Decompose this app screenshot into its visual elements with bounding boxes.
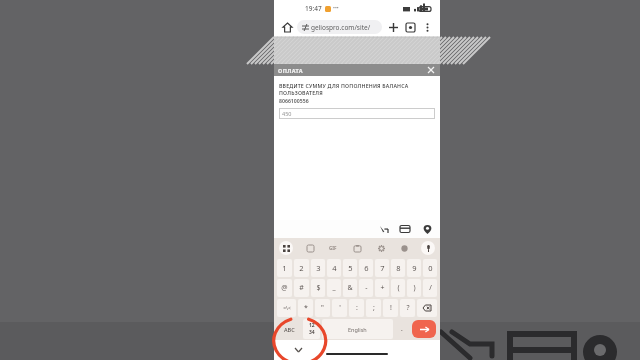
staticText: # [299, 283, 304, 293]
button[interactable]: geliospro.com/site/log [297, 20, 382, 34]
button[interactable]: " [315, 299, 330, 317]
staticText: 5 [348, 263, 353, 273]
staticText: ВВЕДИТЕ СУММУ ДЛЯ ПОПОЛНЕНИЯ БАЛАНСА ПОЛ… [279, 82, 435, 96]
button[interactable]: 0 [423, 259, 437, 277]
staticText: : [356, 303, 358, 313]
staticText: $ [316, 283, 321, 293]
staticText: . [401, 325, 403, 333]
button[interactable]: English [322, 319, 393, 339]
button[interactable]: Autofill [375, 221, 391, 237]
staticText: 8066100556 [279, 97, 309, 104]
button[interactable]: ) [407, 279, 421, 297]
button[interactable]: + [375, 279, 389, 297]
staticText: @ [281, 283, 288, 293]
button[interactable]: Send [412, 320, 436, 338]
button[interactable]: 6 [359, 259, 373, 277]
staticText: GIF [329, 245, 337, 251]
button[interactable]: GIF [326, 241, 340, 255]
button[interactable]: ABC [277, 319, 301, 339]
staticText: ABC [284, 326, 295, 333]
staticText: 3 [316, 263, 321, 273]
staticText: 4 [332, 263, 337, 273]
staticText: 7 [380, 263, 385, 273]
button[interactable]: Settings [374, 241, 388, 255]
staticText: 12 [309, 322, 315, 329]
staticText: ) [413, 283, 416, 293]
button[interactable]: Backspace [417, 299, 437, 317]
button[interactable]: Keyboard settings [279, 241, 293, 255]
button[interactable]: ( [391, 279, 405, 297]
button[interactable]: ! [383, 299, 398, 317]
button[interactable]: Tabs [403, 20, 417, 34]
button[interactable]: ; [366, 299, 381, 317]
button[interactable]: New tab [386, 20, 400, 34]
button[interactable]: ? [400, 299, 415, 317]
button[interactable]: 5 [343, 259, 357, 277]
staticText: " [321, 303, 324, 313]
button[interactable]: 7 [375, 259, 389, 277]
staticText: =\< [283, 305, 291, 312]
staticText: ••• [333, 5, 339, 12]
button[interactable]: _ [327, 279, 341, 297]
staticText: 0 [428, 263, 433, 273]
button[interactable]: Clipboard [350, 241, 364, 255]
button[interactable]: * [298, 299, 313, 317]
button[interactable]: 1 [277, 259, 292, 277]
button[interactable]: Close [426, 65, 436, 75]
button[interactable]: & [343, 279, 357, 297]
staticText: + [380, 283, 385, 293]
staticText: / [429, 283, 432, 293]
button[interactable]: 9 [407, 259, 421, 277]
button[interactable]: / [423, 279, 437, 297]
staticText: 1 [282, 263, 287, 273]
button[interactable]: @ [277, 279, 292, 297]
staticText: - [365, 283, 368, 293]
button[interactable]: 8 [391, 259, 405, 277]
button[interactable]: 4 [327, 259, 341, 277]
staticText: ОПЛАТА [278, 67, 303, 74]
staticText: 19:47 [305, 4, 322, 13]
button[interactable]: More options [420, 20, 434, 34]
button[interactable]: 2 [294, 259, 309, 277]
button[interactable]: =\< [277, 299, 296, 317]
staticText: 9 [412, 263, 417, 273]
button[interactable]: . [395, 319, 409, 339]
button[interactable]: Addresses [419, 221, 435, 237]
staticText: ! [390, 303, 392, 313]
button[interactable]: 450 [279, 108, 435, 119]
staticText: English [348, 326, 367, 333]
staticText: 2 [299, 263, 304, 273]
button[interactable]: Emoji [397, 241, 411, 255]
button[interactable]: Payment cards [397, 221, 413, 237]
button[interactable]: # [294, 279, 309, 297]
staticText: & [347, 283, 353, 293]
button[interactable]: ' [332, 299, 347, 317]
button[interactable]: Voice input [421, 241, 435, 255]
button[interactable]: Home [280, 20, 294, 34]
button[interactable]: Hide keyboard [292, 344, 304, 356]
button[interactable]: $ [311, 279, 325, 297]
staticText: ( [397, 283, 400, 293]
staticText: 34 [309, 329, 315, 336]
staticText: ? [406, 303, 410, 313]
staticText: 6 [364, 263, 369, 273]
staticText: _ [332, 283, 336, 293]
staticText: ' [339, 303, 341, 313]
staticText: ; [373, 303, 375, 313]
staticText: 450 [282, 110, 292, 117]
staticText: 8 [396, 263, 401, 273]
button[interactable]: 3 [311, 259, 325, 277]
button[interactable]: : [349, 299, 364, 317]
staticText: * [304, 303, 308, 313]
button[interactable]: Numbers [303, 319, 320, 339]
button[interactable]: Stickers [303, 241, 317, 255]
staticText: geliospro.com/site/log [311, 23, 377, 32]
button[interactable]: - [359, 279, 373, 297]
